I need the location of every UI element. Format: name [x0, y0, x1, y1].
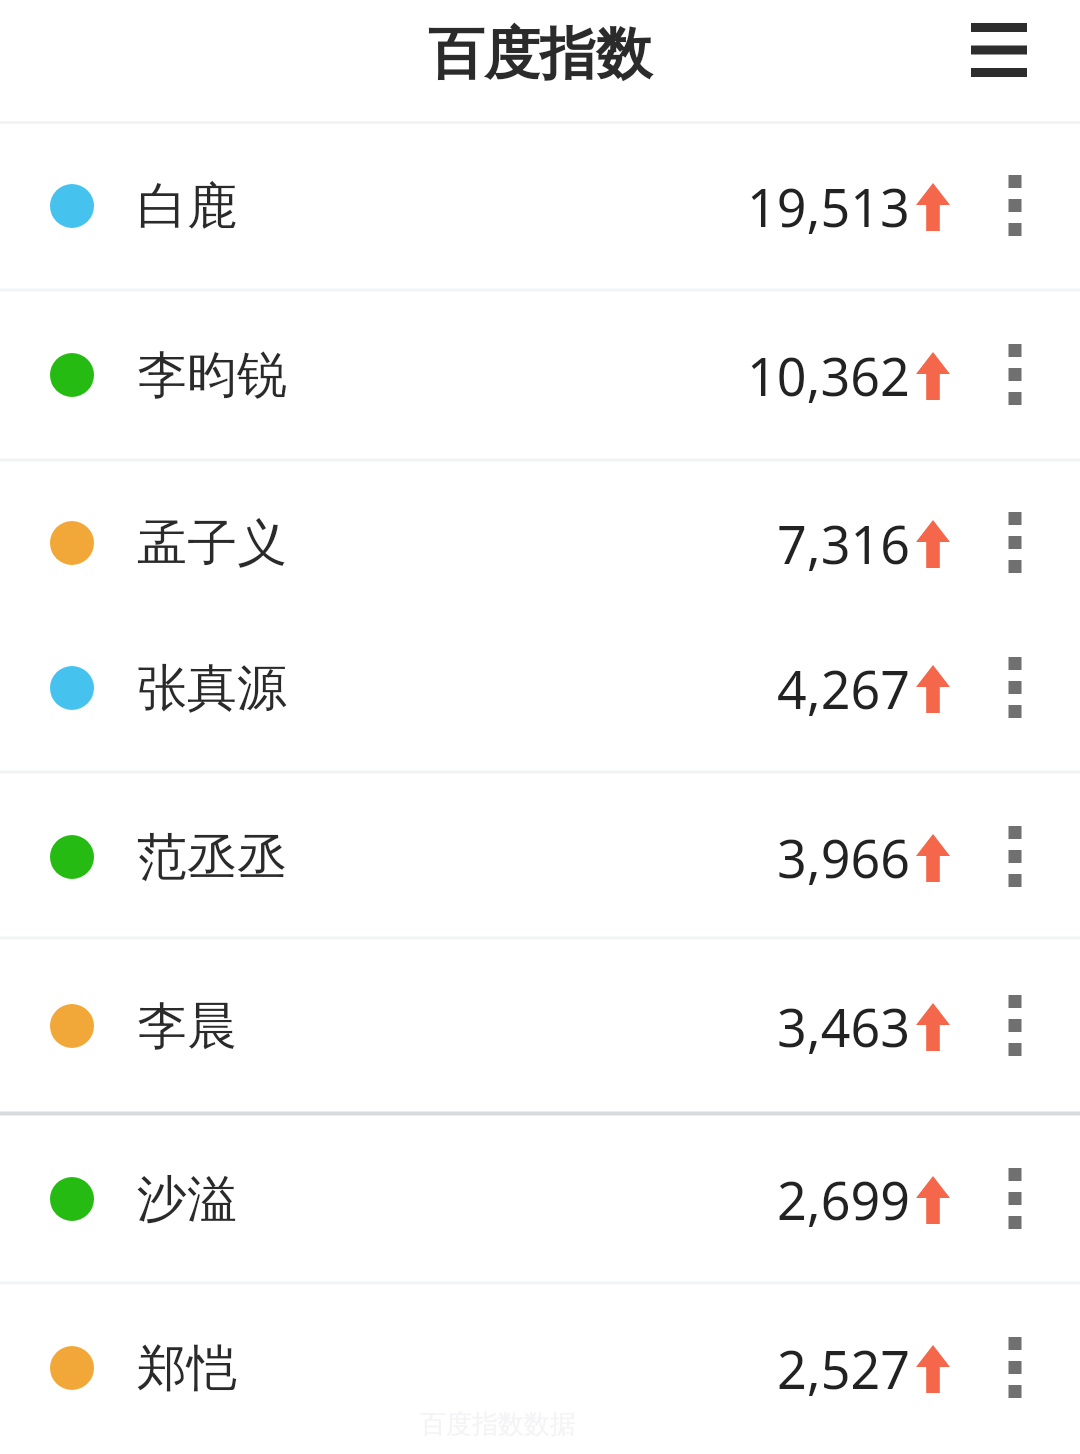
button[interactable]: 孟子义 — [0, 468, 1080, 618]
staticText: 范丞丞 — [137, 826, 287, 889]
staticText: 沙溢 — [137, 1168, 237, 1231]
button[interactable]: More options — [950, 613, 1080, 763]
staticText: 白鹿 — [137, 175, 237, 238]
button[interactable]: 李晨 — [0, 951, 1080, 1101]
button[interactable]: More options — [950, 951, 1080, 1101]
button[interactable]: 李昀锐 — [0, 300, 1080, 450]
staticText: 10,362 — [747, 340, 910, 411]
button[interactable]: 范丞丞 — [0, 782, 1080, 932]
staticText: 19,513 — [747, 171, 910, 242]
staticText: 3,463 — [777, 991, 910, 1062]
button[interactable]: 张真源 — [0, 613, 1080, 763]
staticText: 百度指数数据 — [420, 1408, 576, 1441]
staticText: 2,527 — [777, 1333, 910, 1404]
button[interactable]: 郑恺 — [0, 1293, 1080, 1443]
button[interactable]: More options — [950, 468, 1080, 618]
button[interactable]: More options — [950, 1293, 1080, 1443]
button[interactable]: More options — [950, 131, 1080, 281]
button[interactable]: 白鹿 — [0, 131, 1080, 281]
staticText: 张真源 — [137, 657, 287, 720]
button[interactable]: 沙溢 — [0, 1124, 1080, 1274]
staticText: 李晨 — [137, 995, 237, 1058]
staticText: 4,267 — [777, 653, 910, 724]
staticText: 百度指数 — [428, 19, 652, 90]
staticText: 孟子义 — [137, 512, 287, 575]
button[interactable]: More options — [950, 1124, 1080, 1274]
button[interactable]: More options — [950, 782, 1080, 932]
button[interactable]: More options — [950, 300, 1080, 450]
staticText: 李昀锐 — [137, 344, 287, 407]
staticText: 3,966 — [777, 822, 910, 893]
button[interactable]: Menu — [944, 0, 1054, 100]
staticText: 郑恺 — [137, 1337, 237, 1400]
staticText: 7,316 — [777, 508, 910, 579]
staticText: 2,699 — [777, 1164, 910, 1235]
